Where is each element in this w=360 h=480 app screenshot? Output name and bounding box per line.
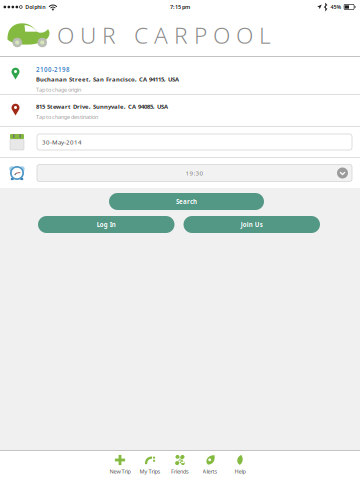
button[interactable]: My Trips (135, 451, 165, 480)
staticText: 7:15 pm (170, 3, 190, 11)
button[interactable]: Friends (165, 451, 195, 480)
staticText: Search (176, 197, 197, 206)
staticText: 19:30 (185, 169, 203, 177)
button[interactable]: 30-May-2014 (37, 134, 352, 150)
button[interactable]: 19:30 (37, 164, 352, 181)
staticText: O U R C A R P O O L (57, 20, 271, 50)
staticText: Friends (171, 467, 189, 475)
staticText: New Trip (109, 467, 130, 475)
staticText: 30-May-2014 (42, 138, 82, 146)
staticText: Log In (97, 220, 116, 229)
staticText: Dolphin (25, 3, 45, 11)
staticText: Help (234, 467, 245, 475)
button[interactable]: 2100-2198 (0, 57, 360, 94)
button[interactable]: Log In (38, 216, 174, 233)
button[interactable]: Help (225, 451, 255, 480)
button[interactable]: 815 Stewart Drive, Sunnyvale, CA 94085, … (0, 95, 360, 126)
staticText: Buchanan Street, San Francisco, CA 94115… (36, 75, 179, 83)
staticText: Tap to chage origin (36, 86, 81, 93)
staticText: Alerts (202, 467, 217, 475)
button[interactable]: New Trip (105, 451, 135, 480)
button[interactable]: Join Us (183, 216, 320, 233)
staticText: Tap to change destination (36, 113, 98, 120)
staticText: 45% (331, 3, 342, 11)
button[interactable]: Alerts (195, 451, 225, 480)
staticText: My Trips (139, 467, 160, 475)
staticText: 2100-2198 (36, 65, 70, 74)
staticText: 815 Stewart Drive, Sunnyvale, CA 94085, … (36, 102, 168, 110)
button[interactable]: Search (109, 193, 264, 210)
staticText: Join Us (241, 220, 263, 229)
